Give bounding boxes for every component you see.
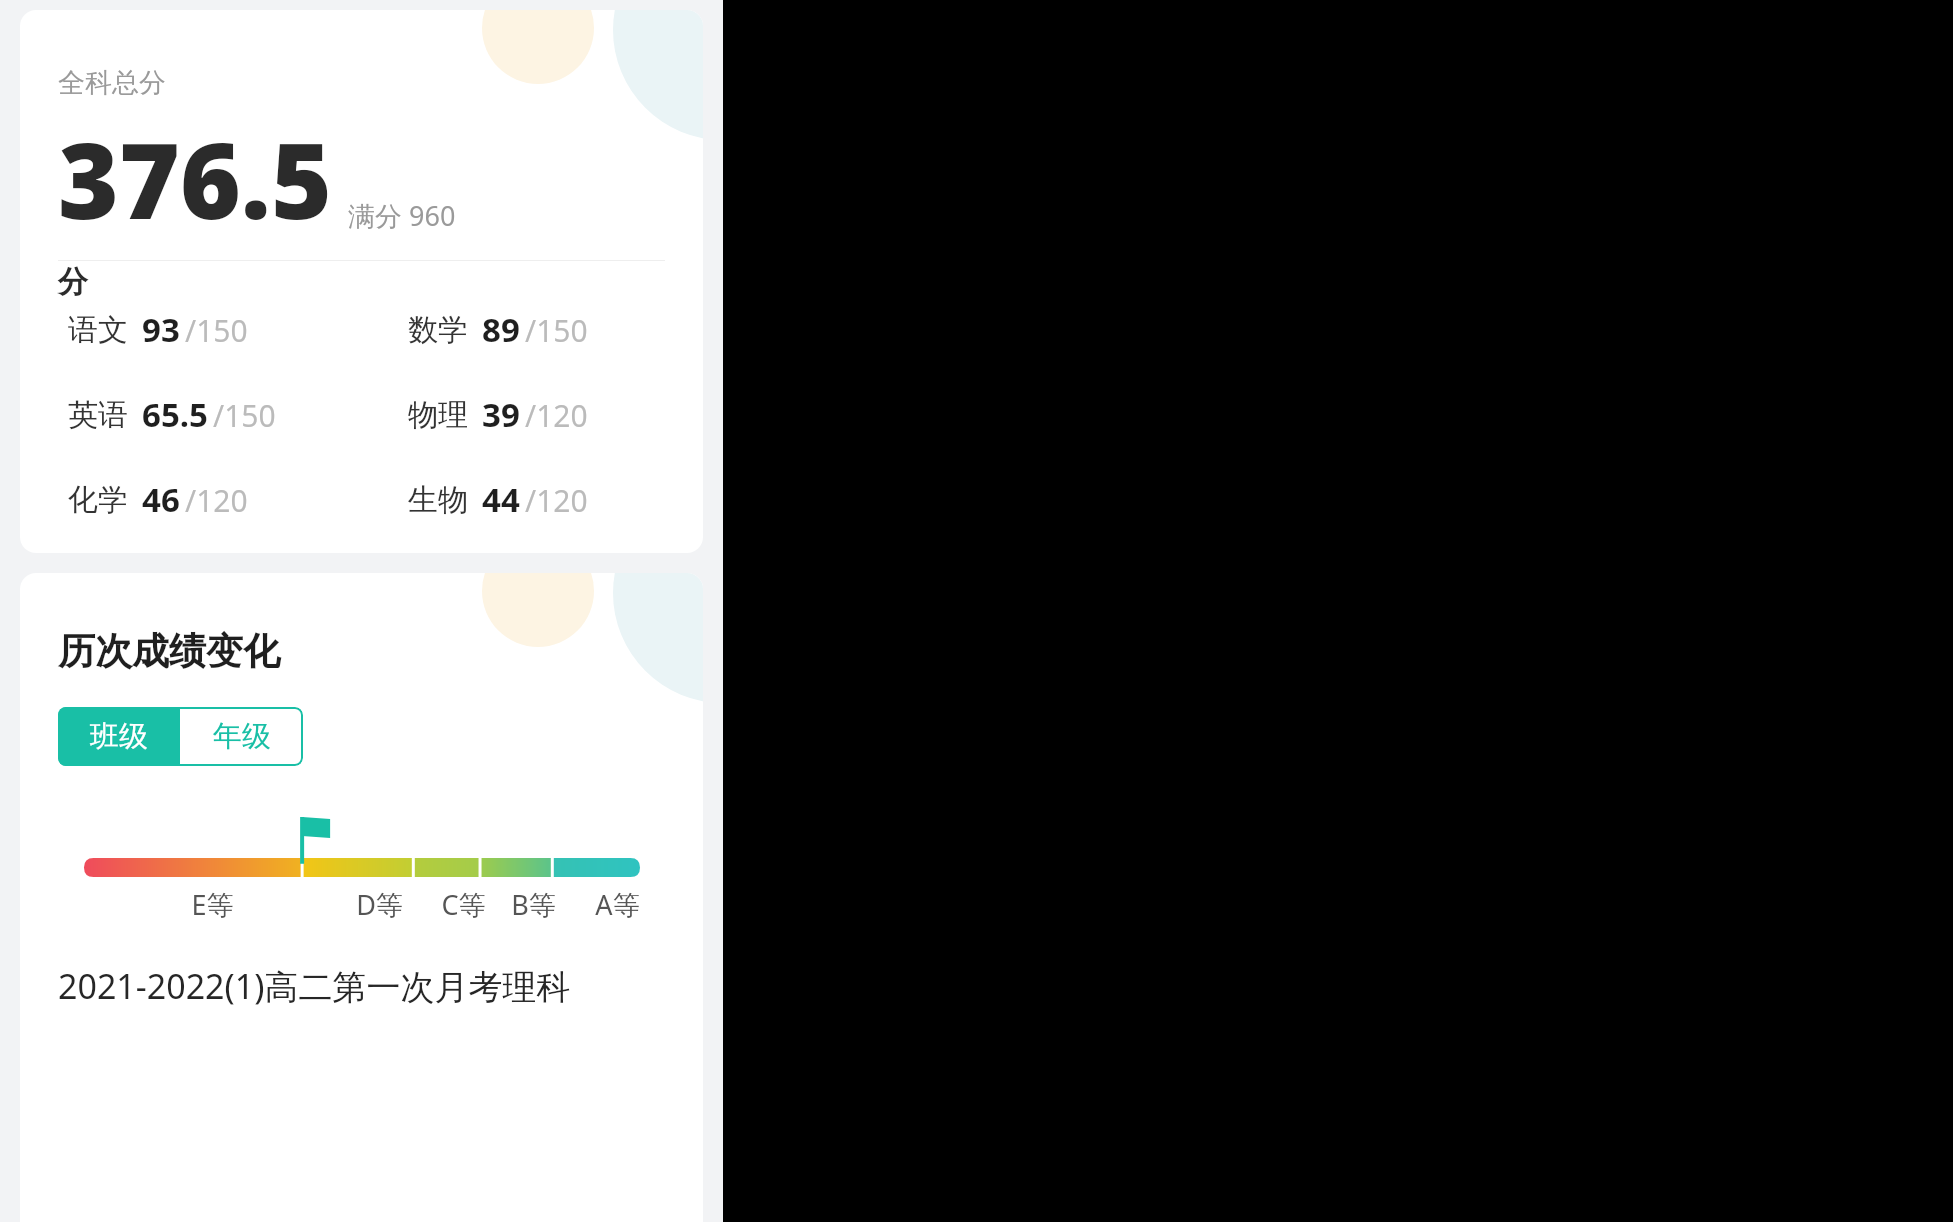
staticText: /150	[185, 310, 248, 351]
staticText: 物理	[408, 396, 468, 434]
staticText: 数学	[408, 311, 468, 349]
staticText: 班级	[90, 718, 148, 755]
staticText: 376.5	[58, 108, 332, 250]
staticText: 满分 960	[348, 197, 456, 234]
staticText: 语文	[68, 311, 128, 349]
staticText: /150	[213, 395, 276, 436]
staticText: 生物	[408, 481, 468, 519]
staticText: 年级	[213, 718, 271, 755]
staticText: 39	[482, 392, 520, 437]
staticText: 93	[142, 307, 180, 352]
staticText: 英语	[68, 396, 128, 434]
staticText: D等	[356, 886, 403, 923]
staticText: 全科总分	[58, 66, 166, 100]
staticText: 分	[58, 263, 88, 301]
button[interactable]: 班级	[58, 707, 180, 766]
staticText: 44	[482, 477, 520, 522]
staticText: C等	[441, 886, 486, 923]
staticText: 65.5	[142, 392, 208, 437]
button[interactable]: 年级	[180, 707, 303, 766]
staticText: 化学	[68, 481, 128, 519]
staticText: E等	[191, 886, 234, 923]
staticText: A等	[595, 886, 640, 923]
staticText: 2021-2022(1)高二第一次月考理科	[58, 963, 571, 1009]
staticText: /120	[525, 480, 588, 521]
staticText: 46	[142, 477, 180, 522]
staticText: /150	[525, 310, 588, 351]
staticText: B等	[511, 886, 556, 923]
staticText: 89	[482, 307, 520, 352]
staticText: /120	[525, 395, 588, 436]
staticText: /120	[185, 480, 248, 521]
staticText: 历次成绩变化	[58, 628, 280, 675]
